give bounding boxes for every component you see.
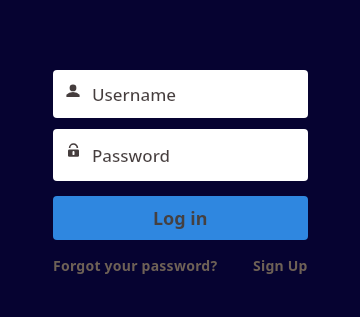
staticText: Log in xyxy=(153,206,208,231)
staticText: Password xyxy=(92,144,171,167)
button[interactable]: Username xyxy=(53,70,308,118)
button[interactable]: Sign Up xyxy=(253,256,308,275)
button[interactable]: Password xyxy=(53,129,308,181)
staticText: Username xyxy=(92,83,176,106)
button[interactable]: Log in xyxy=(53,196,308,240)
button[interactable]: Forgot your password? xyxy=(53,256,218,275)
